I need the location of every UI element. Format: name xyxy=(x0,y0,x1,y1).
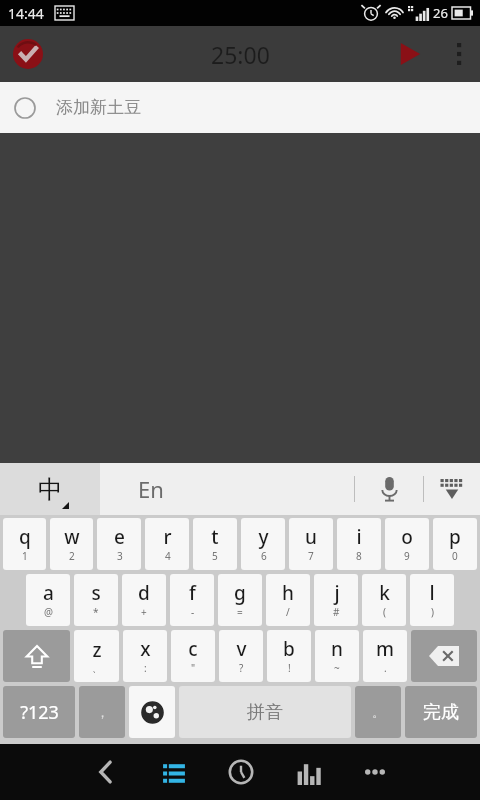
staticText: 4 xyxy=(165,549,171,563)
staticText: 26 xyxy=(433,4,448,22)
staticText: o xyxy=(401,524,413,550)
button[interactable]: ?123 xyxy=(3,686,75,738)
staticText: k xyxy=(379,580,390,606)
staticText: = xyxy=(237,605,243,619)
button[interactable]: x xyxy=(123,630,167,682)
staticText: g xyxy=(234,580,246,606)
button[interactable]: w xyxy=(50,518,93,570)
button[interactable]: c xyxy=(171,630,215,682)
staticText: ! xyxy=(288,661,291,675)
button[interactable]: Backspace xyxy=(411,630,477,682)
button[interactable]: 完成 xyxy=(405,686,477,738)
button[interactable]: f xyxy=(170,574,214,626)
staticText: 2 xyxy=(69,549,75,563)
button[interactable]: r xyxy=(145,518,189,570)
staticText: a xyxy=(43,580,54,606)
button[interactable]: u xyxy=(289,518,333,570)
staticText: i xyxy=(356,524,362,550)
button[interactable]: More xyxy=(341,744,408,800)
staticText: + xyxy=(141,605,147,619)
staticText: n xyxy=(331,636,343,662)
button[interactable]: o xyxy=(385,518,429,570)
button[interactable]: t xyxy=(193,518,237,570)
staticText: 中 xyxy=(38,474,63,505)
staticText: 1 xyxy=(22,549,28,563)
staticText: b xyxy=(283,636,295,662)
button[interactable]: h xyxy=(266,574,310,626)
staticText: 。 xyxy=(372,704,385,720)
button[interactable]: j xyxy=(314,574,358,626)
button[interactable]: 添加新土豆 xyxy=(0,82,480,133)
button[interactable]: Back xyxy=(72,744,140,800)
staticText: z xyxy=(92,637,102,663)
button[interactable]: v xyxy=(219,630,263,682)
staticText: : xyxy=(144,661,147,675)
staticText: v xyxy=(236,636,247,662)
staticText: f xyxy=(189,580,196,606)
button[interactable]: Statistics xyxy=(274,744,341,800)
button[interactable]: e xyxy=(97,518,141,570)
staticText: e xyxy=(114,524,125,550)
button[interactable]: m xyxy=(363,630,407,682)
button[interactable]: n xyxy=(315,630,359,682)
staticText: m xyxy=(376,636,394,662)
button[interactable]: Task list xyxy=(140,744,207,800)
staticText: 9 xyxy=(404,549,410,563)
button[interactable]: Start timer xyxy=(382,26,438,82)
button[interactable]: 。 xyxy=(355,686,401,738)
button[interactable]: Shift xyxy=(3,630,70,682)
staticText: p xyxy=(449,524,461,550)
button[interactable]: App logo xyxy=(0,26,56,82)
staticText: 0 xyxy=(452,549,458,563)
staticText: 5 xyxy=(212,549,218,563)
button[interactable]: En xyxy=(100,463,354,515)
button[interactable]: z xyxy=(74,630,119,682)
button[interactable]: k xyxy=(362,574,406,626)
button[interactable]: p xyxy=(433,518,477,570)
button[interactable]: s xyxy=(74,574,118,626)
staticText: u xyxy=(305,524,317,550)
staticText: 、 xyxy=(92,662,102,675)
staticText: ) xyxy=(431,605,434,619)
button[interactable]: Hide keyboard xyxy=(424,463,480,515)
staticText: 完成 xyxy=(423,701,459,724)
staticText: ? xyxy=(239,661,244,675)
staticText: @ xyxy=(44,605,53,619)
staticText: * xyxy=(93,605,99,619)
staticText: 3 xyxy=(117,549,123,563)
button[interactable]: 拼音 xyxy=(179,686,351,738)
staticText: l xyxy=(429,580,435,606)
staticText: ?123 xyxy=(20,700,59,725)
button[interactable]: g xyxy=(218,574,262,626)
staticText: - xyxy=(191,605,195,619)
button[interactable]: ， xyxy=(79,686,125,738)
staticText: 14:44 xyxy=(8,4,44,23)
button[interactable]: a xyxy=(26,574,70,626)
staticText: c xyxy=(188,636,198,662)
button[interactable]: Voice input xyxy=(355,463,423,515)
button[interactable]: y xyxy=(241,518,285,570)
staticText: q xyxy=(19,524,31,550)
staticText: 8 xyxy=(356,549,362,563)
button[interactable]: b xyxy=(267,630,311,682)
staticText: s xyxy=(91,580,101,606)
button[interactable]: Timer xyxy=(207,744,274,800)
button[interactable]: i xyxy=(337,518,381,570)
button[interactable]: q xyxy=(3,518,46,570)
button[interactable]: l xyxy=(410,574,454,626)
staticText: . xyxy=(384,661,387,675)
staticText: En xyxy=(138,474,164,504)
staticText: d xyxy=(138,580,150,606)
staticText: h xyxy=(282,580,294,606)
button[interactable]: 中 xyxy=(0,463,100,515)
staticText: w xyxy=(64,524,80,550)
staticText: t xyxy=(211,524,219,550)
button[interactable]: d xyxy=(122,574,166,626)
staticText: " xyxy=(191,661,196,675)
button[interactable]: More options xyxy=(438,26,480,82)
staticText: 25:00 xyxy=(211,39,270,70)
staticText: 添加新土豆 xyxy=(56,97,141,118)
button[interactable]: Switch language xyxy=(129,686,175,738)
staticText: j xyxy=(334,580,340,606)
staticText: x xyxy=(140,636,151,662)
